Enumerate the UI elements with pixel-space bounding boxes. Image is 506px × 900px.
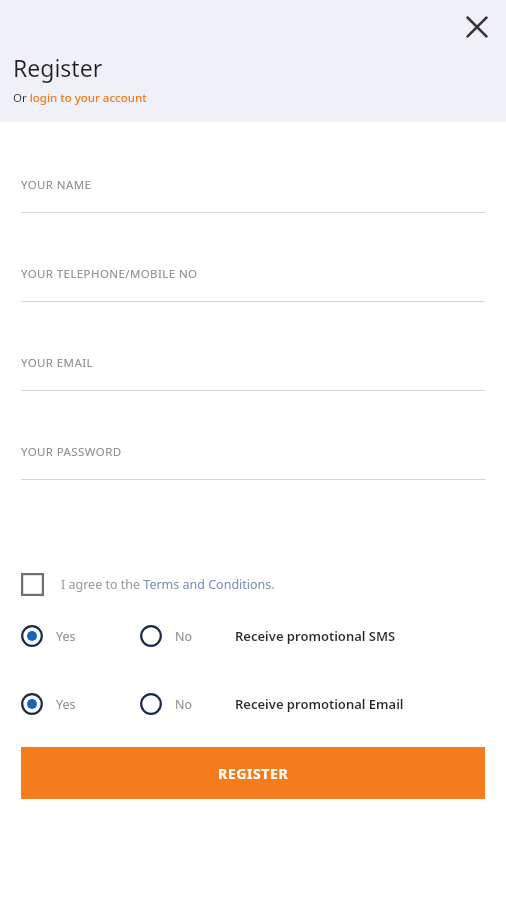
staticText: Yes xyxy=(56,696,76,713)
staticText: Receive promotional SMS xyxy=(235,627,396,645)
button[interactable]: YOUR EMAIL xyxy=(0,355,506,444)
button[interactable]: No xyxy=(140,690,193,718)
button[interactable]: Close xyxy=(456,6,498,48)
button[interactable]: Yes xyxy=(21,690,76,718)
staticText: YOUR NAME xyxy=(21,177,92,193)
staticText: YOUR TELEPHONE/MOBILE NO xyxy=(21,266,198,282)
staticText: Receive promotional Email xyxy=(235,695,404,713)
button[interactable]: YOUR NAME xyxy=(0,177,506,266)
staticText: Yes xyxy=(56,628,76,645)
staticText: Or login to your account xyxy=(13,90,147,106)
staticText: No xyxy=(175,628,193,645)
staticText: No xyxy=(175,696,193,713)
button[interactable]: YOUR PASSWORD xyxy=(0,444,506,533)
button[interactable]: Yes xyxy=(21,622,76,650)
staticText: I agree to the Terms and Conditions. xyxy=(61,576,275,593)
button[interactable]: YOUR TELEPHONE/MOBILE NO xyxy=(0,266,506,355)
staticText: YOUR EMAIL xyxy=(21,355,93,371)
staticText: Register xyxy=(13,52,103,83)
staticText: REGISTER xyxy=(218,764,289,783)
button[interactable]: Or login to your account xyxy=(13,90,147,106)
button[interactable]: I agree to the Terms and Conditions. xyxy=(21,571,283,598)
button[interactable]: No xyxy=(140,622,193,650)
button[interactable]: REGISTER xyxy=(21,747,485,799)
staticText: YOUR PASSWORD xyxy=(21,444,122,460)
